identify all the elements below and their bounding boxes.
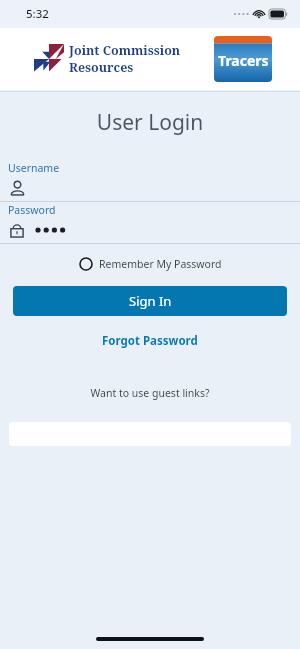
staticText: Resources [69,59,134,76]
button[interactable]: Sign In [13,286,287,316]
button[interactable]: Password [0,202,300,244]
button[interactable]: Forgot Password [0,330,300,352]
staticText: Sign In [129,292,172,310]
staticText: Tracers [218,51,269,70]
staticText: Want to use guest links? [0,386,300,400]
button[interactable]: Remember My Password [0,253,300,275]
staticText: Joint Commission [69,42,181,59]
staticText: Forgot Password [102,333,198,349]
staticText: 5:32 [26,6,49,22]
button[interactable]: Username [0,160,300,202]
staticText: Username [8,161,60,175]
staticText: Password [8,203,56,217]
staticText: User Login [0,108,300,137]
staticText: Remember My Password [99,257,222,271]
